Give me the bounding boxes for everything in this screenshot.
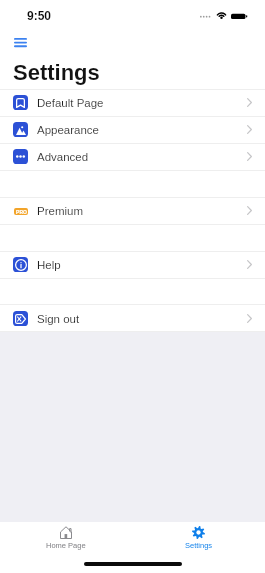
button[interactable]: Sign out xyxy=(0,305,265,331)
button[interactable]: Advanced xyxy=(0,143,265,169)
button[interactable]: Open navigation menu xyxy=(8,32,33,54)
button[interactable]: Appearance xyxy=(0,116,265,142)
button[interactable]: Settings xyxy=(132,522,265,549)
staticText: Home Page xyxy=(46,541,86,549)
staticText: Help xyxy=(37,259,61,272)
button[interactable]: Home Page xyxy=(0,522,132,549)
staticText: Settings xyxy=(185,541,213,549)
button[interactable]: Default Page xyxy=(0,89,265,115)
staticText: PRO xyxy=(16,209,27,215)
staticText: Settings xyxy=(13,60,100,85)
staticText: Appearance xyxy=(37,124,100,137)
staticText: Default Page xyxy=(37,97,104,110)
staticText: Sign out xyxy=(37,313,80,326)
button[interactable]: Help xyxy=(0,251,265,277)
staticText: Advanced xyxy=(37,151,89,164)
staticText: 9:50 xyxy=(27,9,52,22)
staticText: Premium xyxy=(37,205,84,218)
button[interactable]: PRO xyxy=(0,197,265,223)
